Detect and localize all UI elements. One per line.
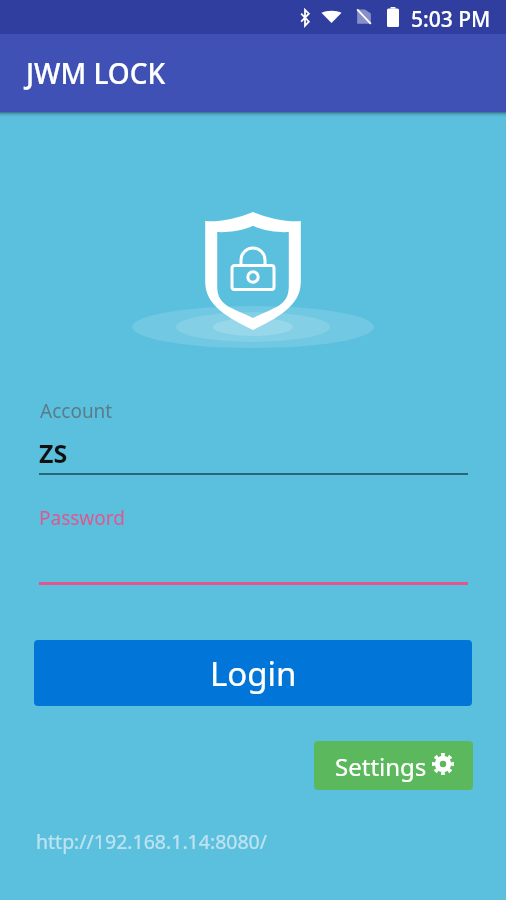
staticText: JWM LOCK: [26, 54, 166, 92]
button[interactable]: Password: [39, 500, 468, 585]
staticText: Login: [210, 651, 297, 696]
button[interactable]: Settings: [314, 741, 473, 790]
staticText: Account: [40, 398, 113, 424]
staticText: Settings: [335, 750, 427, 783]
staticText: 5:03 PM: [411, 5, 491, 34]
button[interactable]: Account: [39, 393, 468, 475]
staticText: http://192.168.1.14:8080/: [36, 828, 268, 855]
staticText: ZS: [39, 436, 68, 470]
button[interactable]: Login: [34, 640, 472, 706]
button[interactable]: http://192.168.1.14:8080/: [36, 824, 268, 852]
staticText: Password: [39, 505, 125, 531]
